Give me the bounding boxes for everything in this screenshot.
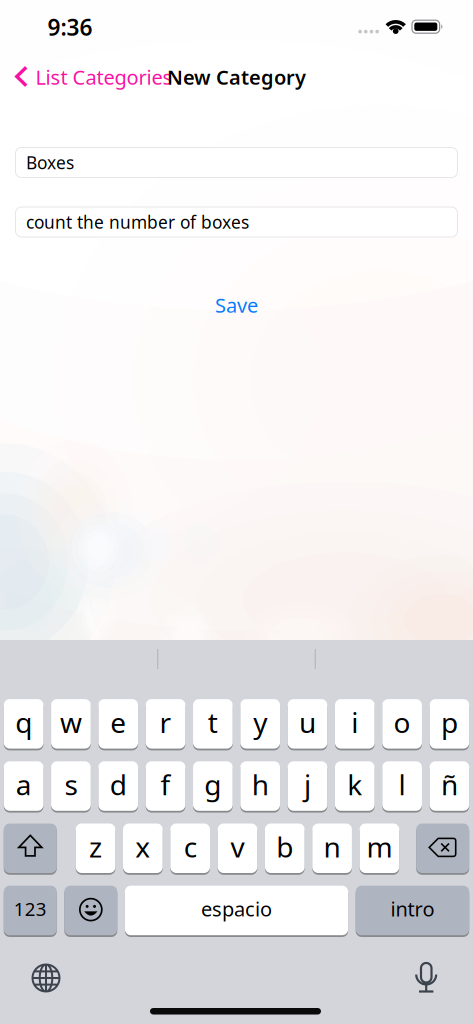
staticText: y [253,704,267,741]
staticText: x [135,828,150,865]
staticText: z [89,828,102,865]
button[interactable]: Boxes [15,147,458,178]
button[interactable]: Next keyboard [31,963,61,993]
staticText: v [230,828,244,865]
button[interactable]: 123 [4,885,57,937]
staticText: t [208,704,218,741]
staticText: u [299,704,316,741]
staticText: w [60,704,82,741]
staticText: d [110,766,127,803]
staticText: s [64,766,77,803]
button[interactable]: y [240,698,280,750]
staticText: i [351,704,358,741]
staticText: 123 [14,896,47,921]
staticText: b [276,828,293,865]
button[interactable]: Save [215,292,258,318]
staticText: l [399,766,406,803]
staticText: Boxes [26,151,74,174]
staticText: ñ [441,766,458,803]
button[interactable]: Shift [4,823,57,874]
button[interactable]: h [240,761,280,812]
button[interactable]: intro [356,885,469,937]
button[interactable]: Emoji [64,885,117,937]
button[interactable]: a [4,761,43,812]
button[interactable]: espacio [125,885,348,937]
staticText: q [15,704,32,741]
button[interactable]: x [123,823,163,874]
button[interactable]: i [335,698,375,750]
staticText: n [324,828,341,865]
staticText: count the number of boxes [26,210,249,233]
staticText: j [304,766,311,803]
staticText: m [366,828,392,865]
staticText: p [441,704,458,741]
button[interactable]: f [146,761,185,812]
button[interactable]: count the number of boxes [15,206,458,237]
button[interactable]: Dictate [411,962,441,993]
button[interactable]: m [360,823,399,874]
button[interactable]: k [335,761,375,812]
button[interactable]: c [170,823,210,874]
button[interactable]: j [288,761,327,812]
button[interactable]: ñ [430,761,469,812]
button[interactable]: b [265,823,305,874]
staticText: k [347,766,362,803]
button[interactable]: u [288,698,327,750]
button[interactable]: z [76,823,115,874]
button[interactable]: Delete [416,823,469,874]
staticText: o [394,704,411,741]
button[interactable]: s [51,761,91,812]
button[interactable]: l [382,761,422,812]
staticText: r [160,704,172,741]
staticText: a [16,766,32,803]
button[interactable]: p [430,698,469,750]
staticText: intro [390,896,434,922]
staticText: New Category [167,64,306,90]
button[interactable]: t [193,698,233,750]
button[interactable]: e [98,698,138,750]
button[interactable]: g [193,761,233,812]
staticText: g [204,766,221,803]
button[interactable]: o [382,698,422,750]
staticText: Save [215,292,258,318]
button[interactable]: n [312,823,352,874]
staticText: List Categories [35,64,172,90]
button[interactable]: d [98,761,138,812]
staticText: c [184,828,197,865]
staticText: e [110,704,126,741]
staticText: espacio [201,896,272,922]
button[interactable]: Back [14,59,184,93]
staticText: f [161,766,171,803]
staticText: h [252,766,269,803]
staticText: 9:36 [47,12,92,42]
button[interactable]: w [51,698,91,750]
button[interactable]: v [218,823,257,874]
button[interactable]: r [146,698,185,750]
button[interactable]: q [4,698,43,750]
